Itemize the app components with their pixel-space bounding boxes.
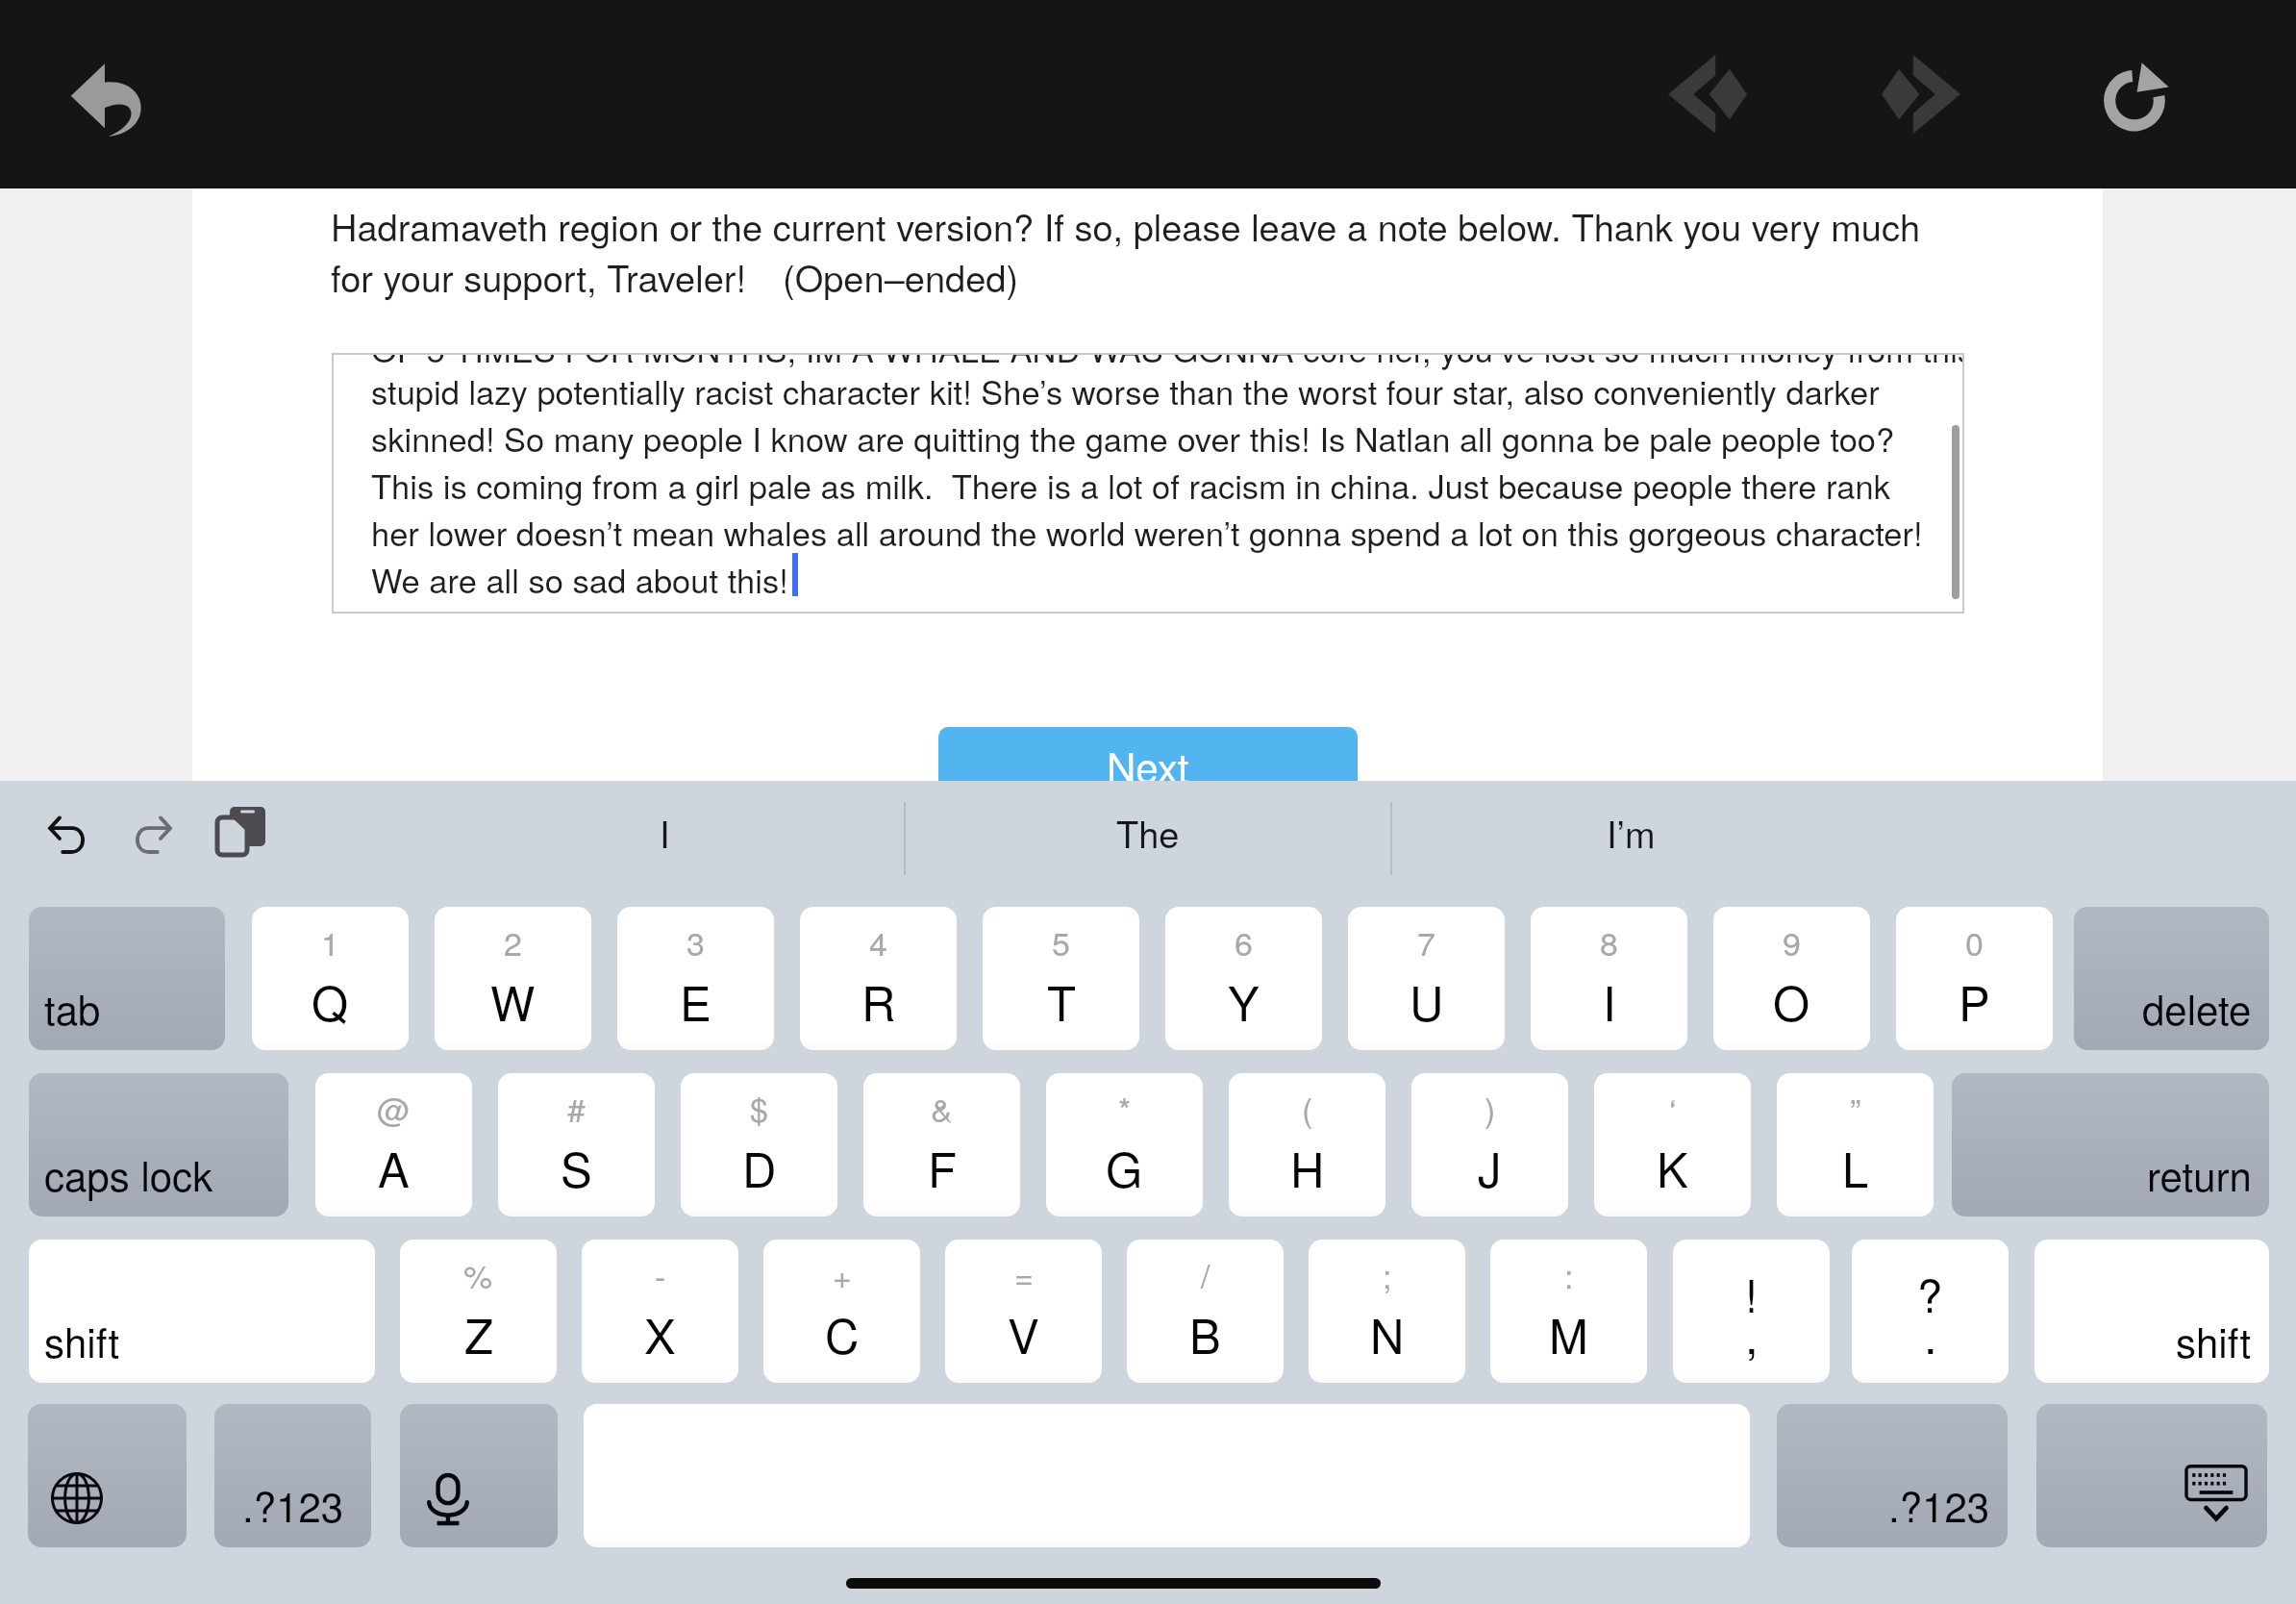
staticText: P	[1959, 967, 1990, 1035]
staticText: -	[655, 1251, 666, 1298]
staticText: 6	[1235, 918, 1253, 965]
staticText: @	[377, 1085, 411, 1132]
staticText: C	[825, 1300, 860, 1367]
button[interactable]: ”	[1777, 1073, 1934, 1216]
staticText: N	[1370, 1300, 1405, 1367]
button[interactable]: caps lock	[29, 1073, 288, 1216]
staticText: U	[1410, 967, 1444, 1035]
staticText: F	[928, 1134, 957, 1201]
button[interactable]: .?123	[214, 1404, 371, 1547]
button[interactable]: Undo	[56, 38, 167, 150]
staticText: M	[1549, 1300, 1588, 1367]
staticText: shift	[2176, 1312, 2252, 1369]
button[interactable]: .?123	[1777, 1404, 2008, 1547]
staticText: T	[1047, 967, 1076, 1035]
staticText: B	[1189, 1300, 1221, 1367]
button[interactable]: @	[315, 1073, 472, 1216]
button[interactable]: I	[424, 781, 905, 894]
staticText: The	[1116, 806, 1180, 858]
button[interactable]: :	[1490, 1240, 1647, 1383]
button[interactable]: return	[1952, 1073, 2269, 1216]
staticText: D	[742, 1134, 777, 1201]
button[interactable]: Undo	[23, 790, 112, 879]
button[interactable]: Dictation	[400, 1404, 558, 1547]
staticText: ”	[1850, 1085, 1861, 1132]
button[interactable]: Redo	[109, 790, 197, 879]
staticText: her lower doesn’t mean whales all around…	[371, 508, 1923, 555]
button[interactable]: =	[945, 1240, 1102, 1383]
button[interactable]: )	[1411, 1073, 1568, 1216]
staticText: W	[490, 967, 536, 1035]
button[interactable]: !	[1673, 1240, 1830, 1383]
button[interactable]: 9	[1713, 907, 1870, 1050]
button[interactable]: 3	[617, 907, 774, 1050]
button[interactable]: tab	[29, 907, 225, 1050]
staticText: 0	[1965, 918, 1984, 965]
staticText: !	[1745, 1261, 1759, 1325]
button[interactable]: ;	[1309, 1240, 1465, 1383]
button[interactable]: Refresh	[2081, 38, 2188, 146]
button[interactable]: 6	[1165, 907, 1322, 1050]
button[interactable]: Next	[938, 727, 1358, 831]
button[interactable]: Hide keyboard	[2036, 1404, 2267, 1547]
staticText: L	[1842, 1134, 1869, 1201]
button[interactable]: shift	[29, 1240, 375, 1383]
button[interactable]: +	[763, 1240, 920, 1383]
staticText: /	[1201, 1251, 1210, 1298]
staticText: X	[644, 1300, 676, 1367]
staticText: 7	[1417, 918, 1435, 965]
button[interactable]: 5	[983, 907, 1139, 1050]
button[interactable]: $	[681, 1073, 837, 1216]
staticText: O	[1773, 967, 1810, 1035]
staticText: 3	[686, 918, 705, 965]
button[interactable]: 1	[252, 907, 409, 1050]
staticText: V	[1008, 1300, 1039, 1367]
staticText: &	[931, 1085, 953, 1132]
staticText: skinned! So many people I know are quitt…	[371, 414, 1895, 461]
staticText: Z	[464, 1300, 493, 1367]
staticText: )	[1485, 1085, 1496, 1132]
staticText: I	[660, 806, 670, 858]
staticText: Hadramaveth region or the current versio…	[331, 199, 2023, 251]
button[interactable]: I’m	[1390, 781, 1871, 894]
button[interactable]: Forward	[1867, 40, 1975, 148]
button[interactable]: &	[863, 1073, 1020, 1216]
button[interactable]: The	[905, 781, 1390, 894]
staticText: $	[750, 1085, 768, 1132]
staticText: ?	[1917, 1261, 1943, 1325]
button[interactable]: 4	[800, 907, 957, 1050]
button[interactable]: (	[1229, 1073, 1385, 1216]
button[interactable]: Back	[1654, 40, 1761, 148]
button[interactable]: delete	[2074, 907, 2269, 1050]
button[interactable]: Change keyboard	[28, 1404, 187, 1547]
button[interactable]: OF 5 TIMES FOR MONTHS, IM A WHALE AND WA…	[332, 353, 1964, 614]
staticText: stupid lazy potentially racist character…	[371, 366, 1880, 414]
button[interactable]: 7	[1348, 907, 1505, 1050]
staticText: shift	[44, 1312, 120, 1369]
staticText: 5	[1052, 918, 1070, 965]
button[interactable]: shift	[2034, 1240, 2269, 1383]
staticText: We are all so sad about this!	[371, 555, 788, 602]
button[interactable]: 2	[435, 907, 591, 1050]
button[interactable]: #	[498, 1073, 655, 1216]
staticText: J	[1478, 1134, 1502, 1201]
button[interactable]: ‘	[1594, 1073, 1751, 1216]
button[interactable]: -	[582, 1240, 738, 1383]
staticText: for your support, Traveler! (Open–ended)	[331, 250, 2023, 302]
button[interactable]: *	[1046, 1073, 1203, 1216]
button[interactable]: 0	[1896, 907, 2053, 1050]
staticText: +	[833, 1251, 852, 1298]
staticText: K	[1657, 1134, 1688, 1201]
button[interactable]: %	[400, 1240, 557, 1383]
staticText: tab	[44, 979, 101, 1037]
staticText: ;	[1383, 1251, 1392, 1298]
staticText: caps lock	[44, 1145, 213, 1203]
button[interactable]: ?	[1852, 1240, 2009, 1383]
staticText: ,	[1745, 1300, 1759, 1367]
staticText: OF 5 TIMES FOR MONTHS, IM A WHALE AND WA…	[371, 353, 1964, 371]
button[interactable]: Paste	[197, 787, 286, 875]
staticText: .?123	[242, 1476, 344, 1534]
button[interactable]: /	[1127, 1240, 1284, 1383]
button[interactable]: 8	[1531, 907, 1687, 1050]
